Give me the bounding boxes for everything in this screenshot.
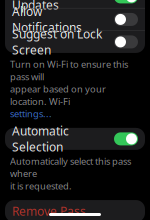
staticText: Allow Notifications	[12, 3, 82, 35]
staticText: settings...	[10, 107, 52, 120]
button[interactable]: Automatic Selection	[5, 128, 145, 150]
button[interactable]: Allow Notifications	[5, 8, 145, 30]
staticText: Suggest on Lock Screen	[12, 26, 102, 58]
staticText: Turn on Wi-Fi to ensure this pass will	[10, 58, 128, 83]
staticText: appear based on your location. Wi-Fi	[10, 83, 106, 107]
button[interactable]: Remove Pass	[5, 200, 145, 220]
button[interactable]: Automatic Updates	[5, 0, 145, 8]
button[interactable]: Suggest on Lock Screen	[5, 31, 145, 53]
staticText: Automatically select this pass where	[10, 155, 131, 180]
staticText: Automatic Updates	[12, 0, 69, 13]
staticText: Remove Pass	[12, 203, 86, 219]
staticText: it is requested.	[10, 180, 72, 192]
staticText: Automatic Selection	[12, 123, 69, 155]
